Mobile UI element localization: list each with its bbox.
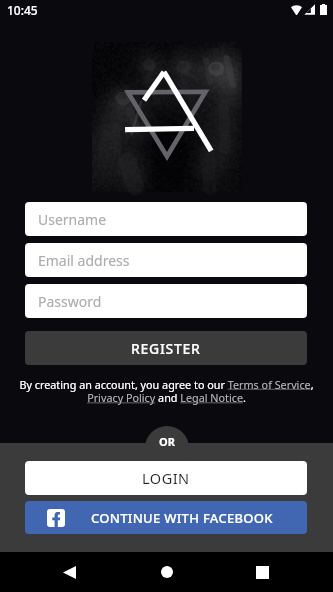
staticText: Username xyxy=(38,210,107,229)
staticText: OR xyxy=(145,434,189,449)
button[interactable]: Email address xyxy=(25,243,307,277)
button[interactable]: By creating an account, you agree to our… xyxy=(14,377,319,405)
button[interactable]: LOGIN xyxy=(25,461,307,495)
button[interactable]: Password xyxy=(25,284,307,318)
button[interactable]: Recent apps xyxy=(242,552,283,592)
button[interactable]: Home xyxy=(146,552,187,592)
staticText: CONTINUE WITH FACEBOOK xyxy=(91,509,273,527)
button[interactable]: REGISTER xyxy=(25,331,307,365)
staticText: Email address xyxy=(38,251,130,270)
staticText: 10:45 xyxy=(7,2,38,18)
button[interactable]: CONTINUE WITH FACEBOOK xyxy=(25,501,307,534)
button[interactable]: Back xyxy=(49,552,90,592)
staticText: LOGIN xyxy=(142,468,190,488)
staticText: Password xyxy=(38,292,102,311)
button[interactable]: Username xyxy=(25,202,307,236)
staticText: REGISTER xyxy=(131,339,201,358)
